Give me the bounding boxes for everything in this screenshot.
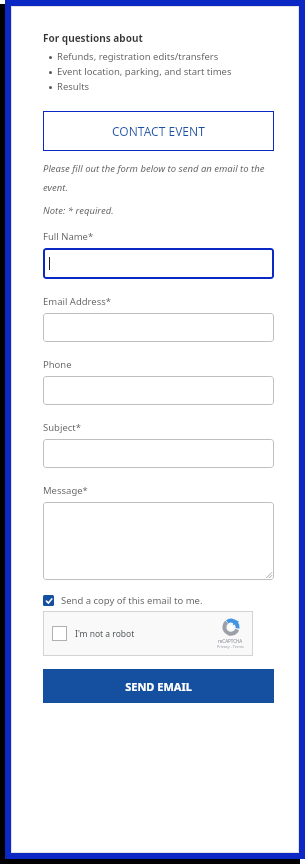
- staticText: For questions about: [43, 31, 143, 45]
- staticText: Results: [57, 80, 90, 93]
- staticText: I'm not a robot: [75, 628, 135, 640]
- button[interactable]: Phone: [43, 376, 274, 405]
- staticText: Full Name*: [43, 230, 94, 243]
- staticText: Phone: [43, 358, 72, 371]
- staticText: Email Address*: [43, 295, 112, 308]
- button[interactable]: Full Name: [43, 248, 274, 279]
- staticText: Refunds, registration edits/transfers: [57, 50, 219, 63]
- staticText: reCAPTCHA: [218, 638, 243, 644]
- staticText: Event location, parking, and start times: [57, 65, 232, 78]
- button[interactable]: Subject: [43, 439, 274, 468]
- staticText: Privacy - Terms: [217, 644, 244, 649]
- staticText: Send a copy of this email to me.: [61, 594, 203, 607]
- button[interactable]: Send a copy of this email to me.: [43, 594, 274, 607]
- staticText: Message*: [43, 484, 88, 497]
- button[interactable]: SEND EMAIL: [43, 669, 274, 703]
- button[interactable]: CONTACT EVENT: [43, 111, 274, 151]
- staticText: SEND EMAIL: [125, 679, 192, 694]
- staticText: Please fill out the form below to send a…: [43, 162, 274, 194]
- staticText: CONTACT EVENT: [112, 123, 205, 139]
- button[interactable]: Email Address: [43, 313, 274, 342]
- staticText: Note: * required.: [43, 204, 114, 217]
- button[interactable]: Message: [43, 502, 274, 580]
- button[interactable]: I'm not a robot reCAPTCHA: [43, 611, 253, 656]
- staticText: Subject*: [43, 421, 81, 434]
